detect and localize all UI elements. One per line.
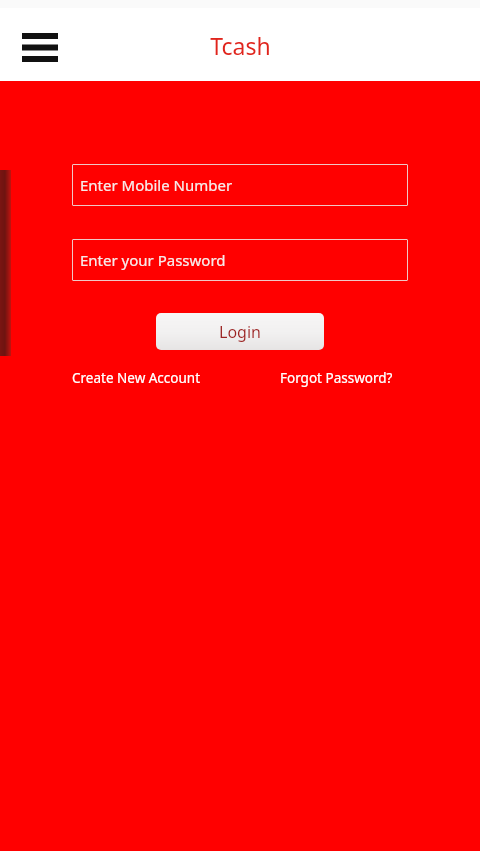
staticText: Create New Account (72, 369, 201, 387)
button[interactable]: Forgot Password? (280, 369, 393, 387)
button[interactable]: Open navigation menu (22, 33, 58, 62)
staticText: Enter Mobile Number (80, 175, 233, 195)
button[interactable]: Login (156, 313, 324, 350)
staticText: Forgot Password? (280, 369, 393, 387)
button[interactable]: Enter Mobile Number (72, 164, 408, 206)
staticText: Login (219, 321, 261, 343)
button[interactable]: Create New Account (72, 369, 201, 387)
staticText: Enter your Password (80, 250, 226, 270)
staticText: Tcash (210, 30, 271, 61)
button[interactable]: Enter your Password (72, 239, 408, 281)
